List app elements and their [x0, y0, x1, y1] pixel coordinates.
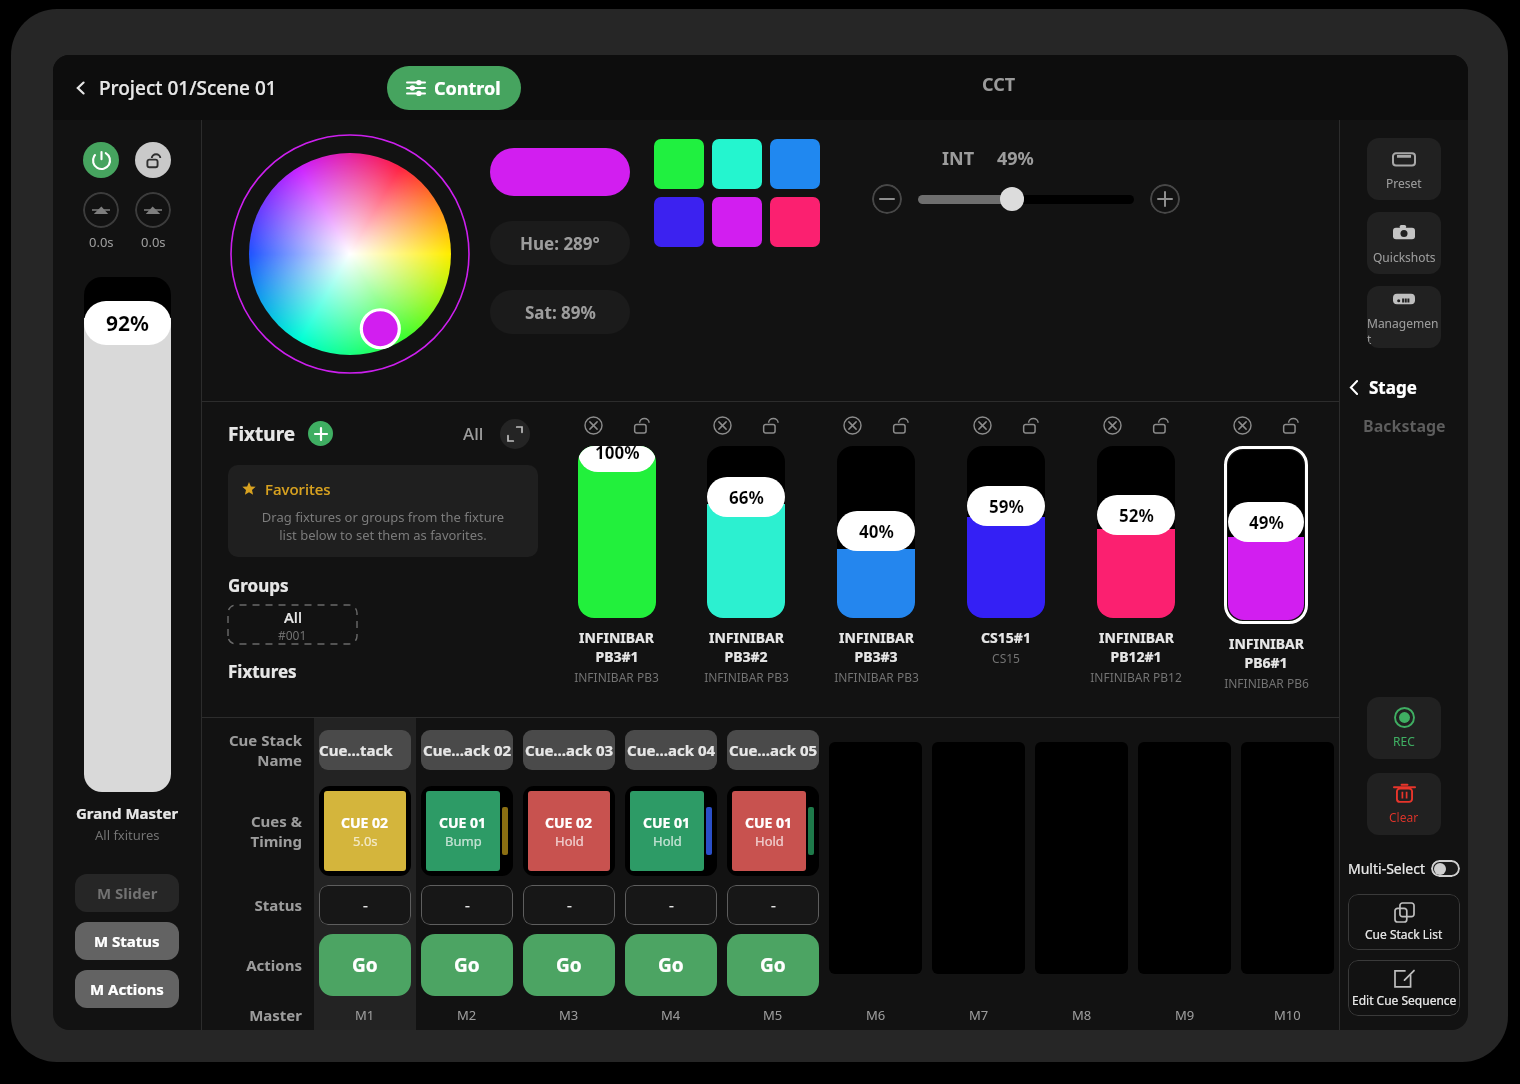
button[interactable]: Lock — [889, 414, 911, 436]
button[interactable]: CUE 01 — [727, 786, 819, 876]
button[interactable]: Back — [67, 69, 283, 107]
button[interactable]: Cue Stack List — [1348, 894, 1460, 950]
staticText: 92% — [106, 309, 149, 338]
button[interactable]: Sat: 89% — [490, 290, 630, 334]
button[interactable]: M Status — [75, 922, 179, 960]
button[interactable]: 49% — [1228, 450, 1304, 620]
staticText: INFINIBAR — [839, 628, 914, 647]
button[interactable]: Cue...ack 02 — [421, 730, 513, 770]
button[interactable]: Favorites — [228, 465, 538, 557]
button[interactable]: Go — [625, 934, 717, 996]
staticText: PB3#2 — [724, 647, 768, 666]
button[interactable]: Remove — [1101, 414, 1123, 436]
button[interactable]: All — [457, 416, 490, 451]
button[interactable]: 52% — [1097, 446, 1175, 618]
button[interactable]: M Slider — [75, 874, 179, 912]
button[interactable]: Decrease — [872, 184, 902, 214]
staticText: M8 — [1072, 1006, 1092, 1024]
button[interactable]: - — [625, 885, 717, 925]
button[interactable]: Cue...tack 01 — [319, 730, 411, 770]
button[interactable] — [770, 139, 820, 189]
button[interactable]: 66% — [707, 446, 785, 618]
button[interactable]: Cue...ack 03 — [523, 730, 615, 770]
staticText: Fixtures — [228, 660, 297, 683]
staticText: - — [567, 895, 572, 915]
button[interactable]: Unlock — [135, 142, 171, 178]
button[interactable]: 100% — [578, 446, 656, 618]
button[interactable]: Lock — [1149, 414, 1171, 436]
button[interactable]: Multi-Select — [1348, 855, 1460, 882]
button[interactable]: - — [319, 885, 411, 925]
button[interactable]: Control — [387, 66, 521, 110]
button[interactable]: Remove — [582, 414, 604, 436]
button[interactable]: CUE 02 — [523, 786, 615, 876]
button[interactable]: Go — [319, 934, 411, 996]
staticText: Cue...ack 04 — [627, 740, 716, 760]
staticText: Bump — [445, 832, 482, 850]
button[interactable]: Remove — [971, 414, 993, 436]
button[interactable]: 40% — [837, 446, 915, 618]
button[interactable] — [712, 197, 762, 247]
staticText: INT — [942, 146, 975, 171]
button[interactable]: Lock — [759, 414, 781, 436]
button[interactable]: - — [421, 885, 513, 925]
button[interactable] — [490, 148, 630, 196]
button[interactable]: CUE 02 — [319, 786, 411, 876]
button[interactable] — [712, 139, 762, 189]
button[interactable]: Lock — [1279, 414, 1301, 436]
button[interactable]: Cue...ack 05 — [727, 730, 819, 770]
staticText: CUE 01 — [745, 813, 793, 832]
button[interactable]: Lock — [630, 414, 652, 436]
button[interactable]: Expand — [500, 419, 530, 449]
button[interactable]: - — [727, 885, 819, 925]
button[interactable]: 59% — [967, 446, 1045, 618]
button[interactable]: Backstage — [1359, 411, 1450, 441]
button[interactable]: Edit Cue Sequence — [1348, 960, 1460, 1016]
staticText: M7 — [969, 1006, 989, 1024]
staticText: INFINIBAR — [1099, 628, 1174, 647]
button[interactable]: Cue...ack 04 — [625, 730, 717, 770]
button[interactable]: Go — [727, 934, 819, 996]
button[interactable]: Management — [1367, 286, 1441, 348]
staticText: Grand Master — [76, 803, 179, 823]
button[interactable]: Quickshots — [1367, 212, 1441, 274]
button[interactable]: Add fixture — [308, 421, 333, 446]
button[interactable]: Power — [83, 142, 119, 178]
button[interactable]: All — [228, 605, 357, 644]
button[interactable] — [918, 186, 1134, 212]
button[interactable]: Go — [523, 934, 615, 996]
button[interactable]: Remove — [1231, 414, 1253, 436]
button[interactable]: Fade down — [135, 192, 171, 228]
staticText: - — [669, 895, 674, 915]
staticText: Fixture — [228, 421, 296, 447]
staticText: #001 — [278, 627, 307, 643]
button[interactable]: Increase — [1150, 184, 1180, 214]
button[interactable]: Stage — [1348, 372, 1460, 403]
button[interactable]: Clear — [1367, 773, 1441, 835]
button[interactable]: Remove — [711, 414, 733, 436]
button[interactable]: 92% — [84, 277, 171, 792]
button[interactable]: Preset — [1367, 138, 1441, 200]
button[interactable] — [654, 139, 704, 189]
button[interactable] — [654, 197, 704, 247]
button[interactable]: CUE 01 — [421, 786, 513, 876]
button[interactable]: M Actions — [75, 970, 179, 1008]
button[interactable] — [770, 197, 820, 247]
staticText: Management — [1367, 315, 1441, 347]
button[interactable]: - — [523, 885, 615, 925]
button[interactable]: CCT — [543, 64, 1454, 111]
button[interactable]: CUE 01 — [625, 786, 717, 876]
button[interactable]: Hue: 289° — [490, 221, 630, 265]
button[interactable]: Remove — [841, 414, 863, 436]
staticText: 5.0s — [353, 832, 378, 850]
button[interactable]: Fade up — [83, 192, 119, 228]
button[interactable]: REC — [1367, 697, 1441, 759]
button[interactable]: Go — [421, 934, 513, 996]
staticText: CUE 01 — [439, 813, 487, 832]
button[interactable]: Lock — [1019, 414, 1041, 436]
